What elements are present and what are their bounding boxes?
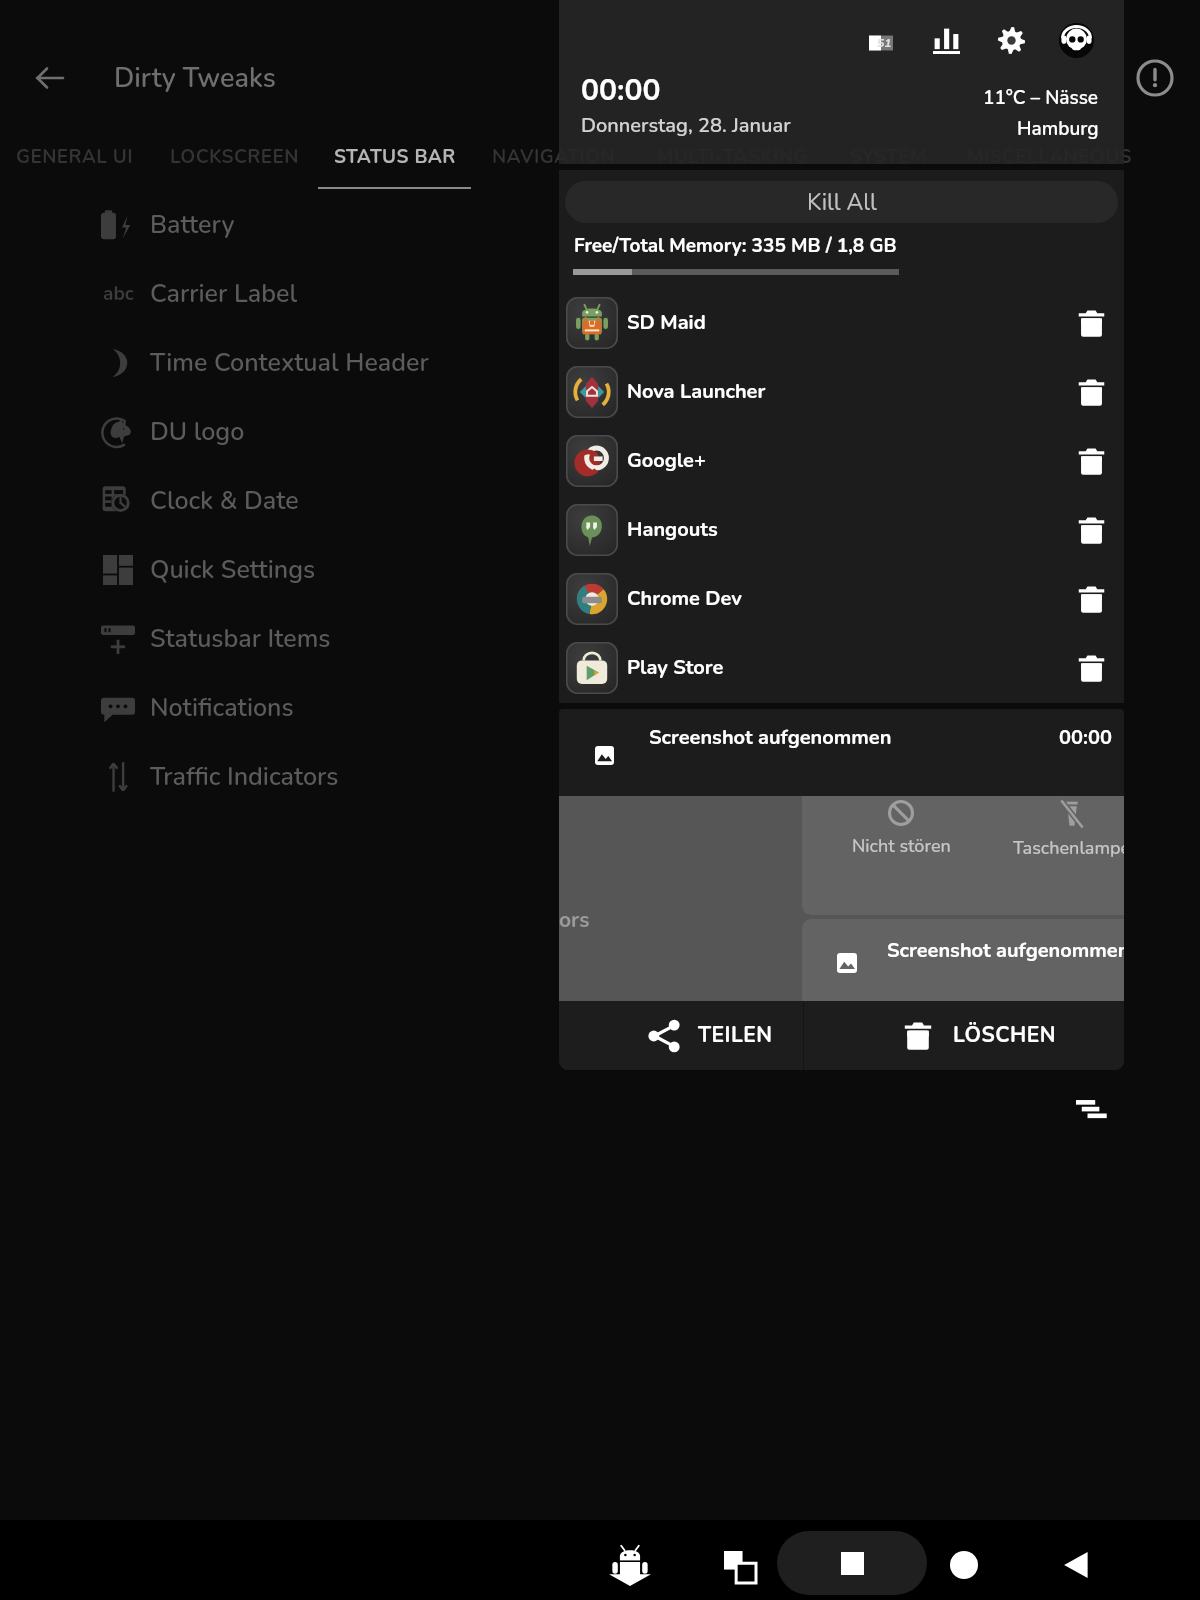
button[interactable]: SYSTEM: [829, 144, 947, 170]
staticText: Free/Total Memory: 335 MB / 1,8 GB: [574, 233, 897, 259]
staticText: Carrier Label: [150, 277, 298, 311]
button[interactable]: Traffic Indicators: [0, 742, 1200, 811]
button[interactable]: Kill Play Store: [1067, 644, 1115, 692]
button[interactable]: Chrome Dev: [559, 564, 1124, 633]
button[interactable]: Hangouts: [559, 495, 1124, 564]
button[interactable]: Recents: [777, 1531, 927, 1595]
button[interactable]: MULTI-TASKING: [637, 144, 827, 170]
staticText: STATUS BAR: [334, 144, 456, 170]
button[interactable]: Statistics: [928, 22, 964, 58]
button[interactable]: MISCELLANEOUS: [949, 144, 1149, 170]
staticText: Taschenlampe: [1013, 836, 1124, 861]
button[interactable]: DU logo: [0, 397, 1200, 466]
button[interactable]: LÖSCHEN: [804, 1001, 1124, 1070]
staticText: Statusbar Items: [150, 622, 331, 656]
staticText: Hamburg: [1017, 116, 1099, 142]
button[interactable]: SD Maid: [559, 288, 1124, 357]
staticText: Chrome Dev: [627, 585, 742, 612]
staticText: 00:00: [581, 70, 661, 111]
button[interactable]: Profile: [1057, 21, 1096, 60]
staticText: ors: [559, 906, 590, 935]
button[interactable]: Battery: [0, 190, 1200, 259]
staticText: Kill All: [807, 187, 877, 218]
button[interactable]: Split screen: [692, 1519, 788, 1600]
staticText: SYSTEM: [850, 144, 927, 170]
staticText: Battery: [150, 208, 235, 242]
staticText: Screenshot aufgenommen: [887, 937, 1124, 964]
button[interactable]: Kill SD Maid: [1067, 299, 1115, 347]
button[interactable]: Home: [916, 1517, 1012, 1600]
staticText: Quick Settings: [150, 553, 316, 587]
button[interactable]: abc: [0, 259, 1200, 328]
staticText: abc: [103, 281, 134, 307]
button[interactable]: Kill Chrome Dev: [1067, 575, 1115, 623]
staticText: Hangouts: [627, 516, 718, 543]
button[interactable]: Sort: [1066, 1083, 1118, 1135]
button[interactable]: TEILEN: [559, 1001, 803, 1070]
button[interactable]: LOCKSCREEN: [152, 144, 316, 170]
button[interactable]: Battery 51 percent: [863, 25, 899, 61]
staticText: DU logo: [150, 415, 245, 449]
button[interactable]: Play Store: [559, 633, 1124, 702]
staticText: Play Store: [627, 654, 724, 681]
staticText: 00:00: [559, 724, 1112, 751]
button[interactable]: Kill Nova Launcher: [1067, 368, 1115, 416]
staticText: Traffic Indicators: [150, 760, 339, 794]
button[interactable]: Statusbar Items: [0, 604, 1200, 673]
staticText: NAVIGATION: [492, 144, 616, 170]
button[interactable]: Kill Hangouts: [1067, 506, 1115, 554]
button[interactable]: Notifications: [0, 673, 1200, 742]
button[interactable]: Taschenlampe: [998, 800, 1124, 861]
staticText: Donnerstag, 28. Januar: [581, 112, 791, 139]
button[interactable]: Nova Launcher: [559, 357, 1124, 426]
staticText: GENERAL UI: [16, 144, 134, 170]
button[interactable]: Google+: [559, 426, 1124, 495]
staticText: Time Contextual Header: [150, 346, 429, 380]
staticText: Nova Launcher: [627, 378, 766, 405]
staticText: MISCELLANEOUS: [967, 144, 1132, 170]
staticText: Clock & Date: [150, 484, 299, 518]
button[interactable]: Download: [582, 1517, 678, 1600]
staticText: Google+: [627, 447, 706, 474]
button[interactable]: Time Contextual Header: [0, 328, 1200, 397]
button[interactable]: Back: [22, 50, 78, 106]
button[interactable]: Back: [1029, 1517, 1125, 1600]
button[interactable]: Clock & Date: [0, 466, 1200, 535]
staticText: 11°C – Nässe: [983, 85, 1099, 111]
button[interactable]: Kill Google+: [1067, 437, 1115, 485]
staticText: Screenshot aufgenommen: [649, 724, 892, 751]
button[interactable]: STATUS BAR: [318, 144, 471, 189]
staticText: TEILEN: [698, 1021, 773, 1050]
button[interactable]: Screenshot aufgenommen: [559, 709, 1124, 796]
button[interactable]: Quick Settings: [0, 535, 1200, 604]
button[interactable]: GENERAL UI: [0, 144, 150, 170]
button[interactable]: NAVIGATION: [473, 144, 635, 170]
staticText: SD Maid: [627, 309, 706, 336]
staticText: LOCKSCREEN: [170, 144, 299, 170]
staticText: 51: [877, 35, 892, 51]
button[interactable]: Warning: [1128, 51, 1182, 105]
button[interactable]: Nicht stören: [827, 800, 975, 859]
button[interactable]: Settings: [993, 22, 1029, 58]
button[interactable]: Kill All: [565, 181, 1118, 223]
staticText: Dirty Tweaks: [114, 60, 276, 97]
staticText: LÖSCHEN: [953, 1021, 1056, 1050]
staticText: Nicht stören: [852, 834, 951, 859]
staticText: MULTI-TASKING: [657, 144, 808, 170]
staticText: Notifications: [150, 691, 294, 725]
